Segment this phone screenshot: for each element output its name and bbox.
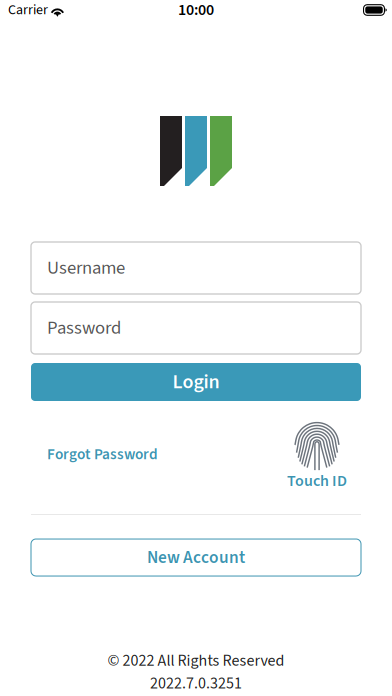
staticText: Touch ID <box>287 470 347 492</box>
staticText: 2022.7.0.3251 <box>150 672 242 695</box>
staticText: 10:00 <box>178 0 214 21</box>
staticText: New Account <box>147 545 245 570</box>
staticText: Password <box>47 315 121 341</box>
button[interactable]: Username <box>31 242 361 294</box>
button[interactable]: Forgot Password <box>31 437 174 472</box>
button[interactable]: Touch ID <box>287 417 361 492</box>
staticText: Forgot Password <box>47 444 158 465</box>
staticText: Login <box>172 368 219 396</box>
staticText: © 2022 All Rights Reserved <box>107 649 284 672</box>
staticText: Carrier <box>8 0 48 20</box>
button[interactable]: Password <box>31 302 361 354</box>
button[interactable]: New Account <box>31 539 361 576</box>
staticText: Username <box>47 255 125 281</box>
button[interactable]: Login <box>31 363 361 401</box>
